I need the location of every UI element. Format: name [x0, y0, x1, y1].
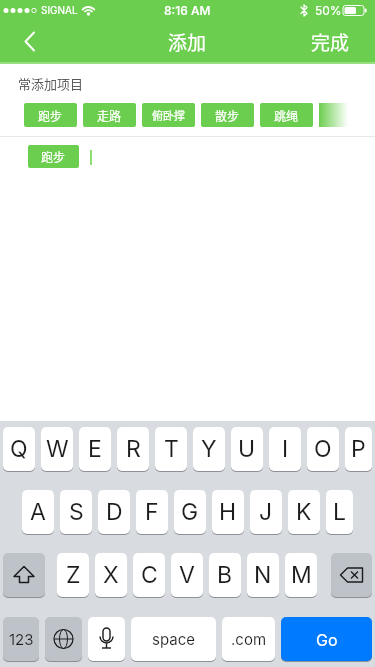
staticText: S: [69, 498, 84, 526]
staticText: P: [351, 435, 366, 463]
button[interactable]: G: [174, 490, 206, 534]
staticText: Y: [201, 435, 217, 463]
button[interactable]: 完成: [311, 28, 350, 56]
button[interactable]: A: [22, 490, 54, 534]
button[interactable]: 走路: [83, 103, 136, 127]
staticText: J: [259, 498, 273, 526]
button[interactable]: P: [345, 427, 372, 471]
button[interactable]: M: [285, 553, 317, 597]
staticText: G: [181, 498, 199, 526]
staticText: 50%: [315, 3, 342, 18]
staticText: L: [333, 498, 347, 526]
button[interactable]: U: [231, 427, 263, 471]
staticText: C: [141, 561, 158, 589]
button[interactable]: K: [288, 490, 320, 534]
button[interactable]: I: [269, 427, 301, 471]
staticText: W: [46, 435, 69, 463]
staticText: 走路: [97, 107, 122, 124]
button[interactable]: [88, 617, 125, 661]
button[interactable]: T: [155, 427, 187, 471]
staticText: D: [106, 498, 123, 526]
button[interactable]: 跳绳: [260, 103, 313, 127]
staticText: H: [219, 498, 237, 526]
staticText: space: [152, 630, 195, 648]
button[interactable]: 俯卧撑: [142, 103, 195, 127]
button[interactable]: 跑步: [24, 103, 77, 127]
staticText: 跳绳: [274, 107, 299, 124]
staticText: 跑步: [41, 148, 66, 165]
button[interactable]: space: [131, 617, 216, 661]
staticText: 常添加项目: [18, 74, 84, 93]
button[interactable]: W: [41, 427, 73, 471]
staticText: T: [164, 435, 179, 463]
button[interactable]: Q: [3, 427, 35, 471]
staticText: K: [296, 498, 312, 526]
button[interactable]: B: [209, 553, 241, 597]
staticText: E: [88, 435, 102, 463]
staticText: 8:16 AM: [164, 3, 211, 18]
button[interactable]: R: [117, 427, 149, 471]
button[interactable]: .com: [222, 617, 275, 661]
staticText: A: [30, 498, 46, 526]
staticText: O: [314, 435, 332, 463]
button[interactable]: Z: [57, 553, 89, 597]
button[interactable]: V: [171, 553, 203, 597]
button[interactable]: Y: [193, 427, 225, 471]
button[interactable]: [0, 20, 44, 64]
staticText: Go: [316, 630, 338, 649]
staticText: 跑步: [38, 107, 63, 124]
button[interactable]: Go: [281, 617, 372, 661]
staticText: 添加: [168, 28, 207, 56]
staticText: SIGNAL: [41, 4, 78, 16]
button[interactable]: 跑步: [28, 145, 79, 168]
staticText: Q: [10, 435, 28, 463]
button[interactable]: N: [247, 553, 279, 597]
button[interactable]: C: [133, 553, 165, 597]
staticText: .com: [231, 630, 267, 648]
button[interactable]: [3, 553, 45, 597]
staticText: F: [145, 498, 159, 526]
staticText: V: [179, 561, 195, 589]
staticText: M: [291, 561, 312, 589]
staticText: X: [103, 561, 119, 589]
staticText: 完成: [311, 28, 350, 56]
button[interactable]: 123: [3, 617, 39, 661]
staticText: 散步: [215, 107, 240, 124]
button[interactable]: H: [212, 490, 244, 534]
button[interactable]: X: [95, 553, 127, 597]
staticText: 123: [9, 630, 34, 648]
staticText: R: [126, 435, 141, 463]
staticText: I: [282, 435, 289, 463]
button[interactable]: O: [307, 427, 339, 471]
button[interactable]: F: [136, 490, 168, 534]
staticText: Z: [66, 561, 81, 589]
button[interactable]: J: [250, 490, 282, 534]
button[interactable]: [331, 553, 372, 597]
button[interactable]: S: [60, 490, 92, 534]
button[interactable]: L: [326, 490, 353, 534]
staticText: U: [238, 435, 256, 463]
button[interactable]: D: [98, 490, 130, 534]
button[interactable]: [45, 617, 82, 661]
button[interactable]: 散步: [201, 103, 254, 127]
staticText: 俯卧撑: [152, 107, 185, 123]
button[interactable]: E: [79, 427, 111, 471]
staticText: N: [254, 561, 272, 589]
staticText: B: [217, 561, 233, 589]
